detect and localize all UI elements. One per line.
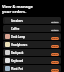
button[interactable]: Details [51, 29, 59, 32]
staticText: Keyboard [11, 59, 24, 63]
button[interactable]: Keyboard [3, 57, 61, 64]
staticText: Track [52, 53, 58, 56]
staticText: View & manage your orders. [2, 4, 33, 14]
button[interactable]: Plant Pot [3, 65, 61, 72]
button[interactable]: Track [51, 69, 59, 72]
staticText: Track [52, 45, 58, 48]
staticText: Track [52, 69, 58, 72]
staticText: Coffee [11, 27, 20, 31]
button[interactable]: Backpack [3, 49, 61, 56]
button[interactable]: Track [51, 61, 59, 64]
staticText: Desk Lamp [11, 35, 26, 39]
button[interactable]: Track [51, 37, 59, 40]
button[interactable]: Track [51, 53, 59, 56]
staticText: Plant Pot [11, 67, 23, 71]
button[interactable]: Desk Lamp [3, 33, 61, 40]
staticText: Sneakers [11, 19, 23, 23]
staticText: Track [52, 37, 58, 40]
staticText: Backpack [11, 51, 24, 55]
staticText: Track [52, 61, 58, 64]
staticText: Headphones [11, 43, 28, 47]
button[interactable]: Details [51, 21, 59, 24]
button[interactable]: Track [51, 45, 59, 48]
staticText: Details [51, 21, 59, 24]
staticText: Details [51, 29, 59, 32]
button[interactable]: Sneakers [3, 17, 61, 24]
button[interactable]: Headphones [3, 41, 61, 48]
button[interactable]: Coffee [3, 25, 61, 32]
